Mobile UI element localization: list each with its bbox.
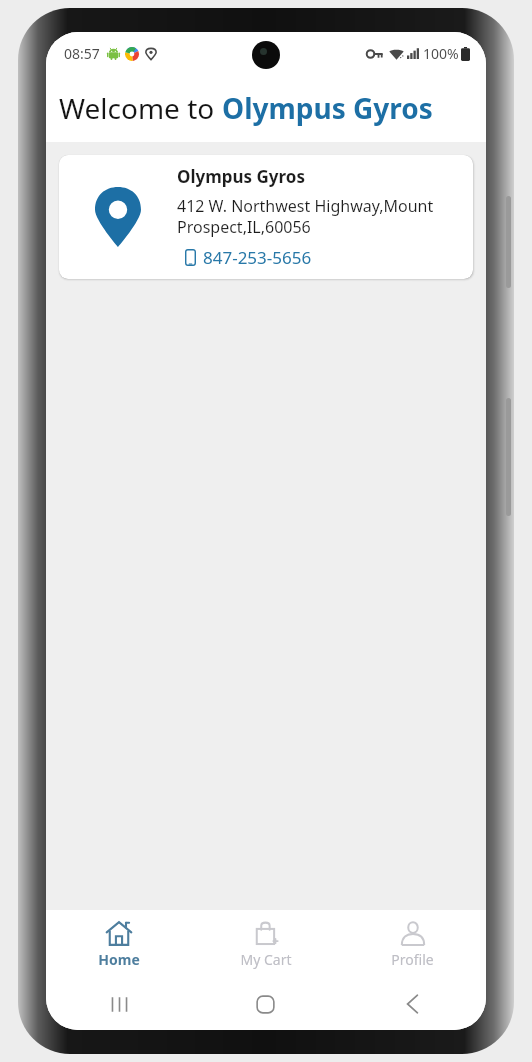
button[interactable]: Home (192, 978, 339, 1030)
button[interactable]: Profile (339, 912, 486, 977)
button[interactable]: Back (339, 978, 486, 1030)
button[interactable]: Olympus Gyros (59, 155, 473, 279)
staticText: Home (98, 950, 140, 969)
staticText: Olympus Gyros (177, 165, 305, 188)
staticText: My Cart (240, 950, 292, 969)
button[interactable]: Recent apps (46, 978, 192, 1030)
staticText: 412 W. Northwest Highway,Mount Prospect,… (177, 195, 434, 238)
staticText: Welcome to (59, 89, 222, 127)
button[interactable]: 847-253-5656 (185, 246, 312, 269)
staticText: 08:57 (64, 44, 100, 63)
staticText: 100% (423, 44, 459, 63)
button[interactable]: Home (46, 912, 192, 977)
staticText: 847-253-5656 (203, 246, 312, 269)
staticText: Olympus Gyros (222, 89, 433, 127)
staticText: Profile (391, 950, 434, 969)
button[interactable]: My Cart (192, 912, 339, 977)
